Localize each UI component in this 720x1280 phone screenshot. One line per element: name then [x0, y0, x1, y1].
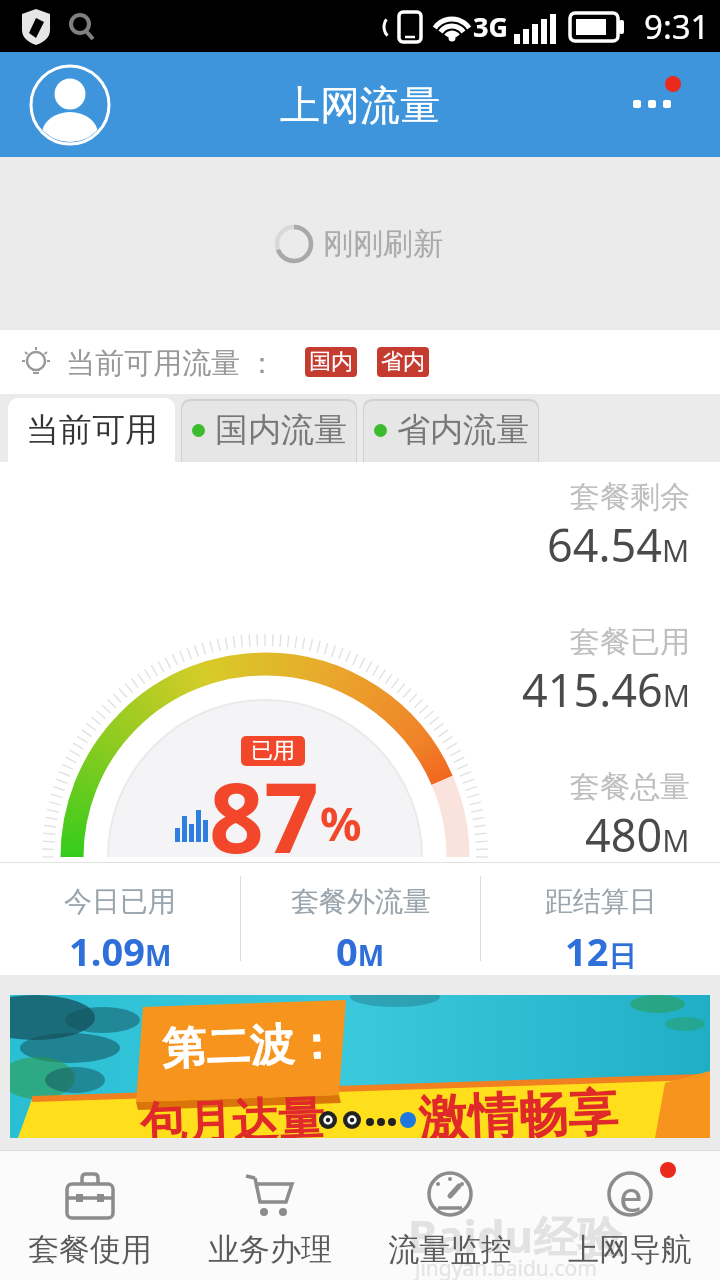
button[interactable]: 套餐外流量 [241, 862, 480, 975]
button[interactable]: 今日已用 [0, 862, 240, 975]
button[interactable]: 省内流量 [363, 398, 539, 462]
button[interactable]: 第二波： [10, 995, 710, 1138]
staticText: 国内 [309, 348, 353, 376]
staticText: 距结算日 [545, 884, 657, 919]
staticText: 刚刚刷新 [323, 225, 443, 263]
button[interactable]: 国内流量 [181, 398, 357, 462]
staticText: 套餐已用 [570, 623, 690, 661]
staticText: 套餐总量 [570, 768, 690, 806]
button[interactable]: 业务办理 [180, 1150, 360, 1280]
button[interactable]: 流量监控 [360, 1150, 540, 1280]
staticText: 流量监控 [388, 1230, 512, 1269]
staticText: 套餐外流量 [291, 884, 431, 919]
staticText: 上网导航 [568, 1230, 692, 1269]
staticText: 今日已用 [64, 884, 176, 919]
button[interactable]: 国内 [305, 347, 357, 377]
staticText: 省内 [381, 348, 425, 376]
staticText: 包月达量 [139, 1090, 325, 1138]
staticText: 激情畅享 [417, 1081, 619, 1138]
staticText: 套餐剩余 [570, 478, 690, 516]
button[interactable] [630, 75, 690, 135]
staticText: 3G [473, 8, 508, 45]
staticText: 1.09M [69, 925, 172, 975]
staticText: 9:31 [644, 4, 710, 49]
staticText: 当前可用流量 ： [66, 342, 277, 382]
staticText: 第二波： [161, 1016, 339, 1077]
staticText: 87 [209, 750, 319, 881]
staticText: 12日 [565, 925, 637, 975]
staticText: Baidu经验 [408, 1206, 622, 1266]
staticText: 415.46M [522, 659, 690, 720]
staticText: 国内流量 [215, 409, 347, 451]
button[interactable]: 当前可用 [8, 398, 175, 462]
staticText: 省内流量 [397, 409, 529, 451]
staticText: 0M [336, 925, 385, 975]
staticText: 64.54M [547, 514, 690, 575]
staticText: 480M [585, 804, 690, 865]
staticText: jingyan.baidu.com [415, 1254, 597, 1280]
staticText: 上网流量 [280, 80, 440, 130]
staticText: % [320, 792, 362, 855]
staticText: 当前可用 [26, 409, 158, 451]
staticText: 业务办理 [208, 1230, 332, 1269]
staticText: 套餐使用 [28, 1230, 152, 1269]
staticText: e [619, 1167, 643, 1224]
staticText: 已用 [251, 737, 295, 765]
button[interactable] [30, 65, 110, 145]
button[interactable]: e [540, 1150, 720, 1280]
button[interactable]: 省内 [377, 347, 429, 377]
button[interactable]: 套餐使用 [0, 1150, 180, 1280]
button[interactable]: 距结算日 [481, 862, 720, 975]
